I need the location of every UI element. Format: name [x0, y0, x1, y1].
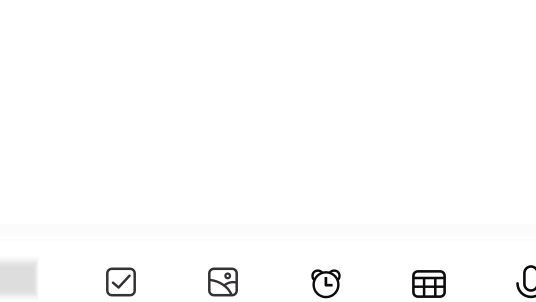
button[interactable]: Photo: [201, 260, 245, 302]
button[interactable]: Dictate: [505, 257, 536, 302]
button[interactable]: Checklist: [99, 260, 143, 302]
button[interactable]: Alarm: [303, 260, 349, 302]
button[interactable]: Table: [406, 262, 452, 302]
button[interactable]: Format: [0, 254, 40, 302]
